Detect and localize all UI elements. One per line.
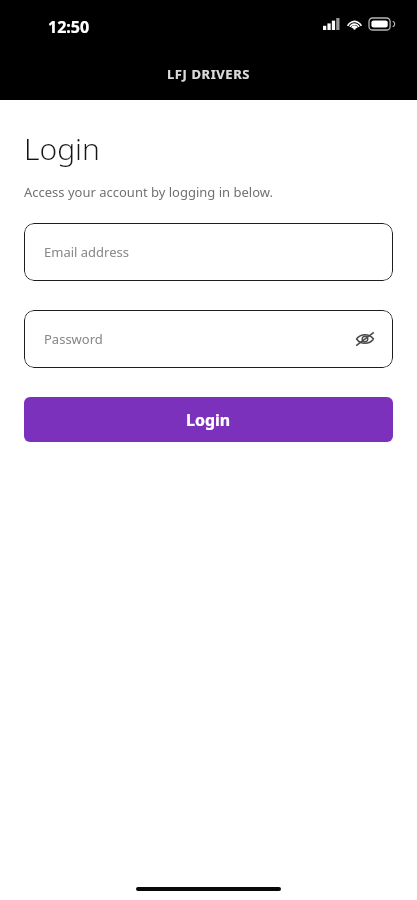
staticText: 12:50 [48, 16, 90, 38]
staticText: Email address [44, 243, 129, 261]
staticText: Access your account by logging in below. [24, 183, 273, 201]
button[interactable]: Email address [24, 223, 393, 281]
button[interactable]: Login [24, 397, 393, 442]
staticText: LFJ DRIVERS [0, 65, 417, 83]
staticText: Login [186, 409, 231, 431]
staticText: Login [24, 128, 100, 169]
staticText: Password [44, 330, 103, 348]
button[interactable]: Password [24, 310, 393, 368]
button[interactable]: Show password [351, 325, 379, 353]
